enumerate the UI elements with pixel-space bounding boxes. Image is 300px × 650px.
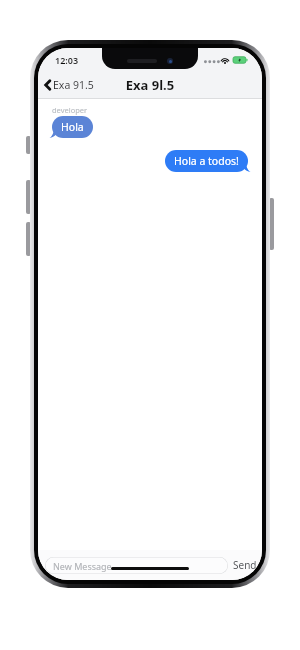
staticText: Hola a todos! — [174, 154, 239, 168]
button[interactable]: Hola a todos! — [165, 150, 251, 172]
staticText: developer — [52, 105, 88, 115]
button[interactable]: New Message text field — [45, 557, 228, 574]
staticText: Hola — [61, 120, 84, 134]
staticText: New Message — [53, 560, 112, 572]
button[interactable]: Hola — [49, 116, 93, 138]
staticText: Exa 91.5 — [53, 78, 94, 92]
staticText: Send — [233, 558, 257, 572]
button[interactable]: Send — [228, 554, 262, 576]
staticText: Exa 9l.5 — [38, 76, 262, 94]
staticText: 12:03 — [55, 54, 79, 66]
button[interactable]: Back to Exa 91.5 — [38, 75, 100, 95]
